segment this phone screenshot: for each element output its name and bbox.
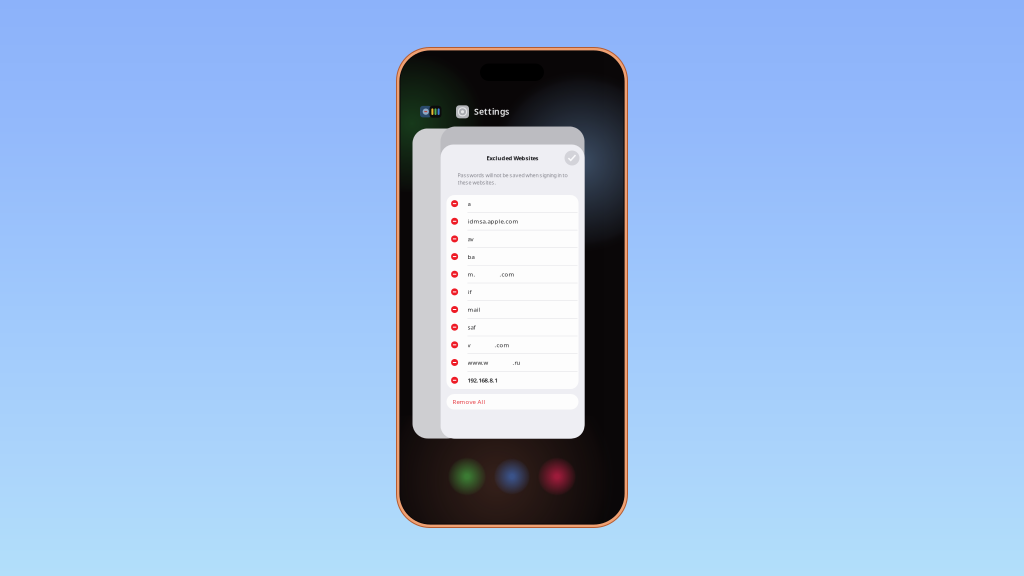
button[interactable]: idmsa.apple.com [446,213,578,230]
staticText: saf [467,323,475,331]
staticText: v .com [467,341,509,349]
staticText: www.w .ru [467,358,520,367]
button[interactable]: saf [446,319,578,336]
staticText: if [467,288,471,296]
staticText: ba [467,252,474,261]
button[interactable]: m. .com [446,266,578,283]
staticText: 192.168.8.1 [467,376,497,384]
staticText: m. .com [467,270,514,278]
staticText: Remove All [452,398,485,406]
staticText: a [467,199,470,208]
button[interactable]: av [446,230,578,248]
button[interactable]: a [446,195,578,213]
button[interactable]: v .com [446,336,578,354]
staticText: Settings [474,106,509,117]
button[interactable]: if [446,283,578,301]
button[interactable]: 192.168.8.1 [446,371,578,389]
button[interactable]: ba [446,248,578,266]
staticText: mail [467,305,480,314]
button[interactable]: Done [564,150,579,165]
button[interactable]: mail [446,301,578,318]
staticText: Excluded Websites [486,154,538,162]
button[interactable]: Remove All [446,394,578,409]
staticText: av [467,235,473,243]
button[interactable]: www.w .ru [446,354,578,371]
staticText: Passwords will not be saved when signing… [457,171,567,186]
staticText: idmsa.apple.com [467,217,518,225]
